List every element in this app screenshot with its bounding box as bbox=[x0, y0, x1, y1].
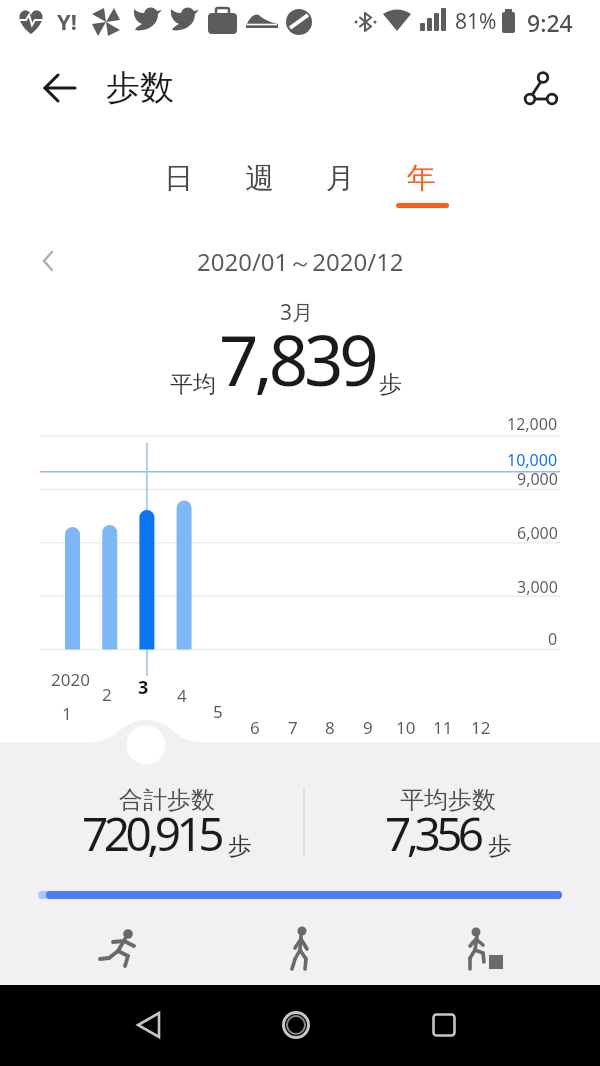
staticText: 12 bbox=[471, 716, 491, 739]
staticText: 10,000 bbox=[507, 449, 558, 471]
staticText: 歩数 bbox=[106, 66, 174, 109]
staticText: 平均歩数 bbox=[400, 785, 496, 815]
staticText: 12,000 bbox=[507, 413, 558, 435]
button[interactable] bbox=[271, 920, 331, 976]
staticText: 3 bbox=[138, 675, 149, 700]
staticText: 720,915 bbox=[82, 802, 220, 865]
staticText: 7 bbox=[288, 716, 298, 739]
staticText: 月 bbox=[326, 160, 355, 197]
staticText: 2 bbox=[102, 683, 112, 706]
button[interactable]: 年 bbox=[389, 153, 453, 203]
staticText: 6 bbox=[250, 716, 260, 739]
staticText: 3月 bbox=[280, 298, 314, 327]
staticText: 歩 bbox=[228, 831, 252, 861]
staticText: 週 bbox=[245, 160, 274, 197]
staticText: 日 bbox=[164, 160, 193, 197]
button[interactable]: 月 bbox=[308, 153, 372, 203]
staticText: 歩 bbox=[488, 831, 512, 861]
button[interactable]: 日 bbox=[146, 153, 210, 203]
staticText: 2020 bbox=[51, 668, 90, 691]
staticText: 2020/01～2020/12 bbox=[197, 245, 404, 278]
button[interactable] bbox=[266, 995, 326, 1055]
staticText: 6,000 bbox=[517, 522, 558, 544]
staticText: 平均 bbox=[170, 370, 216, 399]
staticText: 81% bbox=[455, 7, 497, 36]
staticText: 歩 bbox=[379, 370, 402, 399]
button[interactable]: 週 bbox=[227, 153, 291, 203]
staticText: 3,000 bbox=[517, 576, 558, 598]
button[interactable] bbox=[510, 62, 570, 114]
staticText: 4 bbox=[177, 684, 187, 707]
staticText: 合計歩数 bbox=[119, 785, 215, 815]
button[interactable] bbox=[414, 995, 474, 1055]
staticText: 0 bbox=[548, 628, 558, 650]
button[interactable] bbox=[118, 995, 178, 1055]
staticText: 9:24 bbox=[527, 7, 573, 38]
staticText: 11 bbox=[433, 716, 453, 739]
button[interactable] bbox=[90, 920, 150, 976]
staticText: Y! bbox=[57, 6, 77, 36]
staticText: 9 bbox=[363, 716, 373, 739]
staticText: 7,839 bbox=[219, 312, 375, 406]
staticText: 1 bbox=[62, 702, 72, 725]
staticText: 9,000 bbox=[517, 468, 558, 490]
button[interactable] bbox=[453, 920, 513, 976]
button[interactable] bbox=[32, 62, 88, 114]
staticText: 8 bbox=[325, 716, 335, 739]
staticText: 年 bbox=[407, 160, 436, 197]
staticText: 7,356 bbox=[385, 802, 480, 865]
staticText: 5 bbox=[213, 700, 223, 723]
staticText: 10 bbox=[396, 716, 416, 739]
button[interactable] bbox=[34, 246, 62, 276]
